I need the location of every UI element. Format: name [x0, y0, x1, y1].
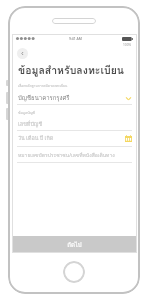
staticText: หมายเลขบัตรประชาชน/เลขที่หนังสือเดินทาง [18, 151, 115, 159]
button[interactable]: บัญชีธนาคารกรุงศรี [12, 92, 137, 104]
other: Pick date [125, 135, 132, 142]
staticText: 9:41 AM [69, 36, 82, 41]
staticText: ข้อมูลสำหรับลงทะเบียน [18, 62, 125, 79]
staticText: เลขที่บัญชี [18, 120, 43, 129]
staticText: ถัดไป [67, 240, 82, 250]
button[interactable]: ถัดไป [12, 236, 137, 253]
staticText: วัน เดือน ปี เกิด [18, 134, 54, 143]
staticText: 100% [123, 43, 132, 47]
staticText: เลือกหลักฐานการสมัครลงทะเบียน [18, 83, 68, 88]
button[interactable]: หมายเลขบัตรประชาชน/เลขที่หนังสือเดินทาง [12, 147, 137, 162]
staticText: บัญชีธนาคารกรุงศรี [18, 93, 70, 103]
button[interactable]: เลขที่บัญชี [12, 119, 137, 130]
staticText: ข้อมูลบัญชี [18, 110, 35, 116]
button[interactable]: Home [63, 261, 85, 283]
button[interactable]: วัน เดือน ปี เกิด [12, 131, 137, 146]
button[interactable]: Back [17, 48, 28, 59]
